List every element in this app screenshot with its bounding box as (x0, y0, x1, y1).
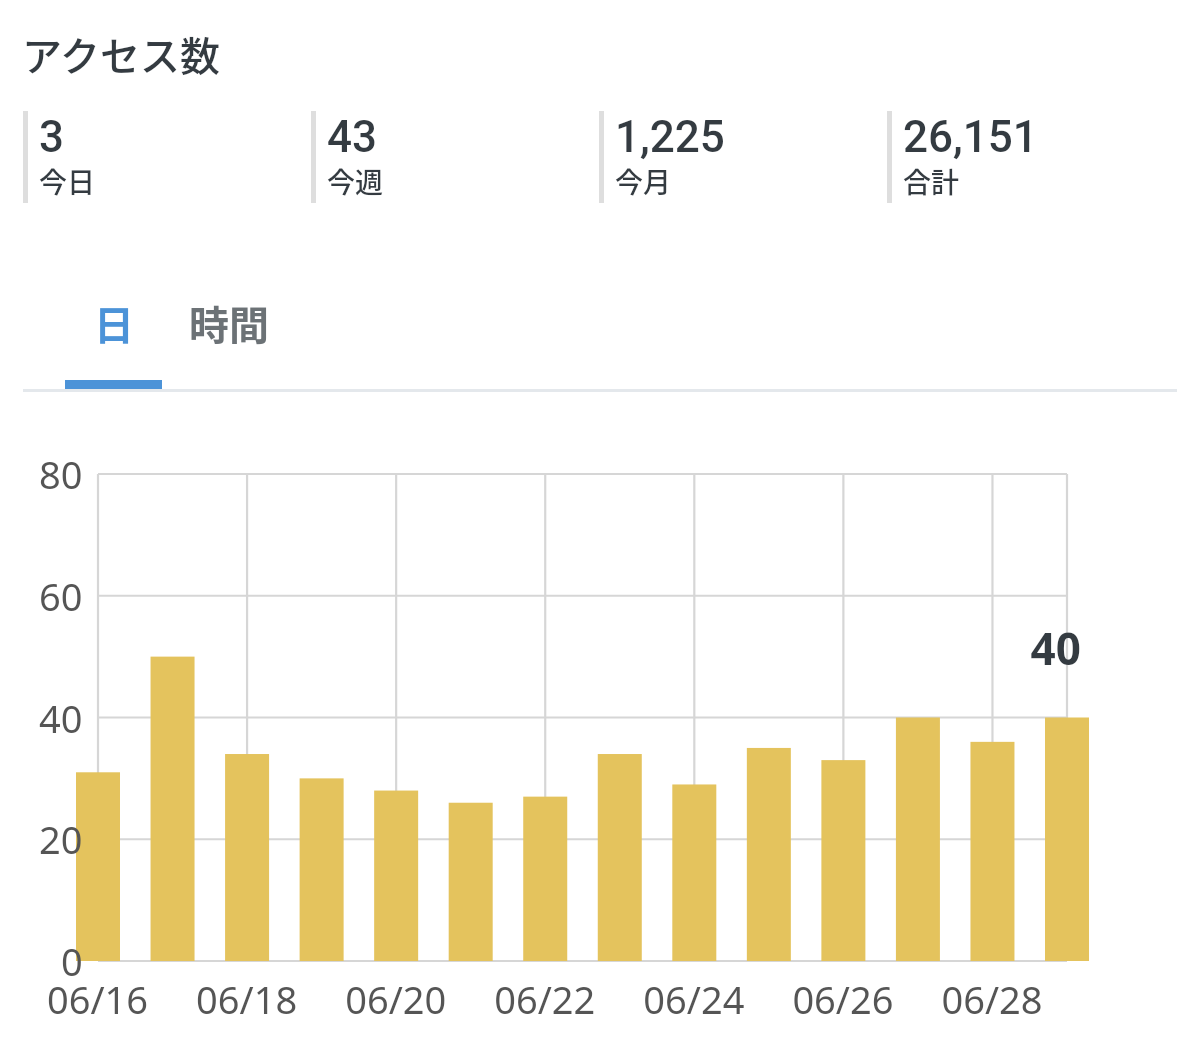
staticText: 時間 (189, 294, 269, 352)
staticText: 合計 (903, 161, 960, 202)
button[interactable]: 26,151 (887, 111, 1175, 204)
staticText: 今週 (327, 161, 384, 202)
staticText: 3 (39, 111, 65, 163)
staticText: 1,225 (615, 111, 725, 163)
staticText: 日 (94, 294, 134, 352)
other: アクセス数の日別棒グラフ (0, 410, 1200, 1057)
button[interactable]: 43 (311, 111, 599, 204)
button[interactable]: 3 (23, 111, 311, 204)
staticText: 今日 (39, 161, 96, 202)
staticText: アクセス数 (22, 25, 220, 83)
button[interactable]: 日 (65, 275, 162, 370)
staticText: 今月 (615, 161, 672, 202)
staticText: 26,151 (903, 111, 1038, 163)
staticText: 43 (327, 111, 378, 163)
button[interactable]: 時間 (162, 275, 296, 370)
button[interactable]: 1,225 (599, 111, 887, 204)
